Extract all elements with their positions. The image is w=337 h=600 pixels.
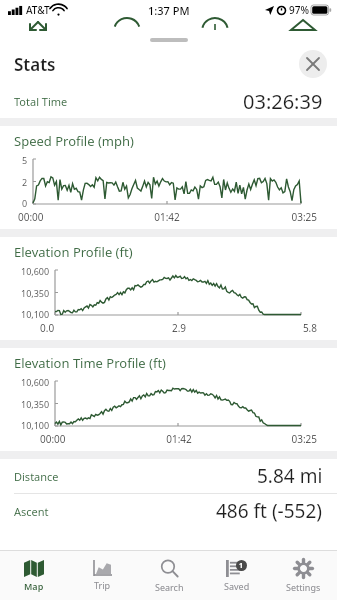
staticText: 2: [22, 176, 28, 188]
staticText: Elevation Time Profile (ft): [14, 354, 167, 372]
staticText: 10,350: [21, 398, 50, 410]
staticText: 00:00: [40, 432, 133, 446]
staticText: Settings: [286, 581, 321, 593]
staticText: Stats: [14, 53, 56, 76]
staticText: 10,100: [21, 419, 50, 431]
staticText: 5.8: [225, 321, 317, 335]
staticText: 5: [22, 154, 28, 166]
button[interactable]: Settings: [270, 551, 337, 600]
staticText: 486 ft (-552): [216, 498, 323, 524]
staticText: 10,100: [21, 308, 50, 320]
staticText: 2.9: [133, 321, 225, 335]
staticText: 1:37 PM: [148, 3, 190, 18]
staticText: 5.84 mi: [257, 463, 323, 489]
staticText: Saved: [224, 580, 250, 592]
staticText: 0.0: [40, 321, 133, 335]
staticText: 00:00: [18, 210, 117, 224]
staticText: 10,350: [21, 287, 50, 299]
staticText: 1: [239, 561, 244, 571]
button[interactable]: Search: [136, 551, 203, 600]
staticText: Search: [155, 581, 184, 593]
staticText: Distance: [14, 469, 59, 484]
staticText: AT&T: [26, 3, 50, 17]
button[interactable]: Ascent: [0, 494, 337, 528]
staticText: 0: [22, 197, 28, 209]
button[interactable]: Elevation Profile (ft): [0, 237, 337, 340]
button[interactable]: Total Time: [0, 84, 337, 118]
staticText: Speed Profile (mph): [14, 132, 134, 150]
staticText: Total Time: [14, 94, 68, 109]
button[interactable]: Map: [0, 551, 68, 600]
staticText: Ascent: [14, 504, 49, 519]
button[interactable]: 1: [203, 551, 270, 600]
staticText: 03:25: [217, 210, 317, 224]
button[interactable]: Trip: [68, 551, 136, 600]
button[interactable]: Speed Profile (mph): [0, 126, 337, 229]
staticText: 10,600: [21, 265, 50, 277]
staticText: Trip: [94, 579, 111, 591]
button[interactable]: Elevation Time Profile (ft): [0, 348, 337, 451]
staticText: Map: [24, 580, 44, 592]
staticText: 03:26:39: [243, 88, 323, 115]
staticText: 10,600: [21, 376, 50, 388]
staticText: 01:42: [133, 432, 225, 446]
button[interactable]: Close: [299, 50, 327, 78]
staticText: 97%: [289, 3, 309, 17]
staticText: 01:42: [117, 210, 217, 224]
button[interactable]: Distance: [0, 459, 337, 493]
staticText: Elevation Profile (ft): [14, 243, 133, 261]
staticText: 03:25: [225, 432, 317, 446]
